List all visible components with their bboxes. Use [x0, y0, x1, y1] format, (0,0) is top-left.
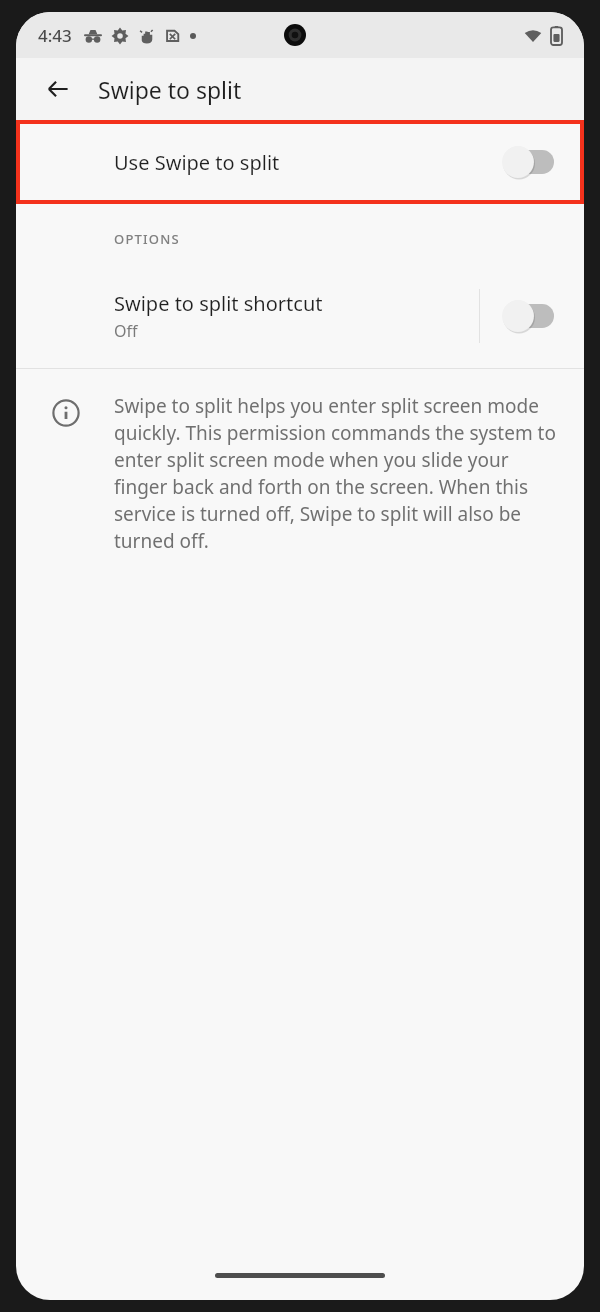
button[interactable]: Toggle [502, 299, 554, 333]
staticText: 4:43 [38, 24, 72, 47]
button[interactable]: Use Swipe to split [16, 120, 584, 204]
button[interactable]: Back [36, 67, 80, 111]
button[interactable]: Toggle [502, 145, 554, 179]
staticText: Off [114, 320, 138, 342]
staticText: Use Swipe to split [114, 149, 502, 176]
staticText: Swipe to split helps you enter split scr… [114, 393, 562, 554]
staticText: Swipe to split [98, 74, 242, 105]
staticText: Swipe to split shortcut [114, 290, 323, 317]
staticText: OPTIONS [114, 230, 180, 248]
button[interactable]: Swipe to split shortcut [16, 290, 479, 342]
